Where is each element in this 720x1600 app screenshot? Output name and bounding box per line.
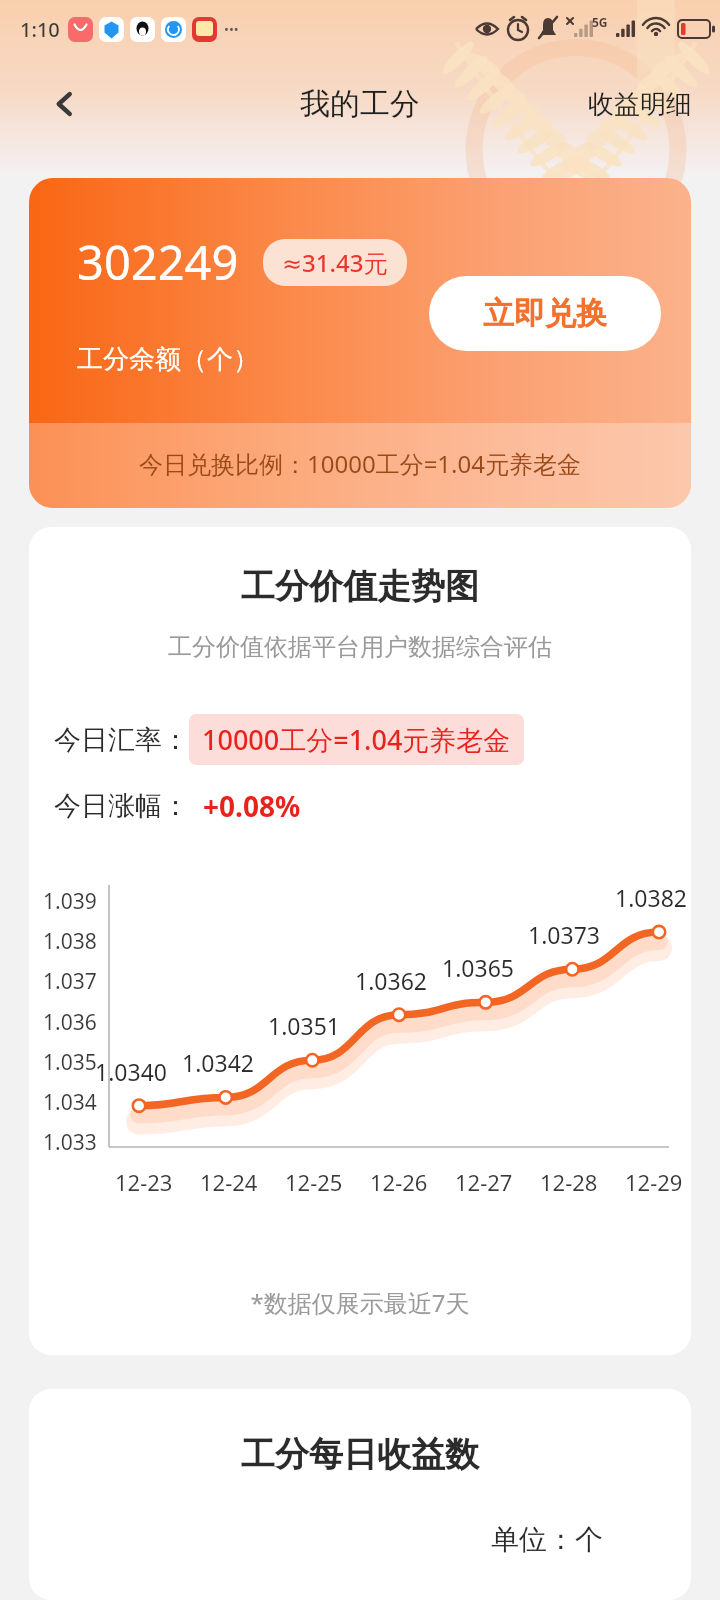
staticText: 工分余额（个） [77, 343, 259, 376]
staticText: 10000工分=1.04元养老金 [202, 721, 511, 758]
staticText: 12-23 [115, 1167, 173, 1197]
button[interactable]: 工分价值走势图 [29, 527, 691, 1355]
staticText: 我的工分 [300, 85, 420, 123]
staticText: 1.0342 [182, 1047, 254, 1078]
button[interactable]: 收益明细 [580, 82, 700, 127]
button[interactable]: 立即兑换 [429, 276, 661, 351]
staticText: 今日涨幅： [54, 789, 189, 823]
staticText: 1.035 [43, 1048, 97, 1077]
staticText: 1.0340 [95, 1056, 167, 1087]
staticText: 12-26 [370, 1167, 428, 1197]
staticText: 工分价值走势图 [29, 565, 691, 608]
staticText: 302249 [77, 230, 239, 294]
staticText: 1.0382 [615, 882, 687, 913]
staticText: 12-25 [285, 1167, 343, 1197]
staticText: 1.034 [43, 1088, 97, 1117]
staticText: 1.036 [43, 1008, 97, 1037]
staticText: 工分价值依据平台用户数据综合评估 [29, 632, 691, 662]
staticText: 今日汇率： [54, 723, 189, 757]
button[interactable]: 工分每日收益数 [29, 1389, 691, 1600]
staticText: 1.038 [43, 927, 97, 956]
staticText: 工分每日收益数 [29, 1433, 691, 1476]
button[interactable]: 302249 [29, 178, 691, 508]
staticText: 1.0351 [268, 1010, 340, 1041]
staticText: 1.033 [43, 1128, 97, 1157]
staticText: 1.0365 [442, 952, 514, 983]
staticText: 1.039 [43, 887, 97, 916]
staticText: ••• [224, 20, 239, 38]
staticText: ≈31.43元 [282, 246, 388, 279]
staticText: 1.0362 [355, 965, 427, 996]
staticText: 立即兑换 [483, 294, 607, 333]
staticText: *数据仅展示最近7天 [29, 1286, 691, 1319]
staticText: 5G [592, 14, 608, 30]
button[interactable]: Back [34, 73, 96, 135]
button[interactable]: ≈31.43元 [263, 239, 407, 286]
staticText: +0.08% [203, 787, 301, 825]
staticText: 12-24 [200, 1167, 258, 1197]
staticText: 12-28 [540, 1167, 598, 1197]
staticText: 单位：个 [29, 1522, 603, 1557]
staticText: 今日兑换比例：10000工分=1.04元养老金 [139, 447, 581, 480]
staticText: 12-27 [455, 1167, 513, 1197]
staticText: 12-29 [625, 1167, 683, 1197]
staticText: 1.037 [43, 967, 97, 996]
staticText: 收益明细 [588, 88, 692, 121]
staticText: 1:10 [20, 16, 60, 43]
staticText: 1.0373 [528, 919, 600, 950]
